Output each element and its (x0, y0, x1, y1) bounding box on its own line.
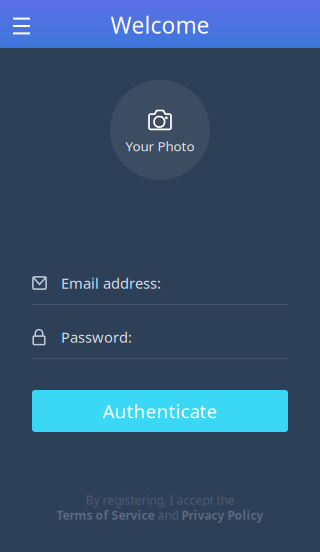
button[interactable]: Terms of Service (56, 507, 154, 523)
staticText: Welcome (110, 10, 209, 40)
button[interactable]: Menu (1, 4, 41, 48)
button[interactable]: Authenticate (32, 390, 288, 432)
button[interactable]: Privacy Policy (181, 507, 263, 523)
staticText: Your Photo (125, 137, 194, 155)
staticText: Privacy Policy (181, 507, 263, 523)
button[interactable]: Password: (32, 320, 288, 354)
staticText: Password: (61, 327, 132, 347)
staticText: and (154, 507, 181, 523)
staticText: Authenticate (102, 399, 217, 423)
staticText: Terms of Service (56, 507, 154, 523)
button[interactable]: Your Photo (110, 80, 210, 180)
staticText: Email address: (61, 273, 161, 293)
button[interactable]: Email address: (32, 266, 288, 300)
staticText: By registering, I accept the (85, 492, 234, 508)
